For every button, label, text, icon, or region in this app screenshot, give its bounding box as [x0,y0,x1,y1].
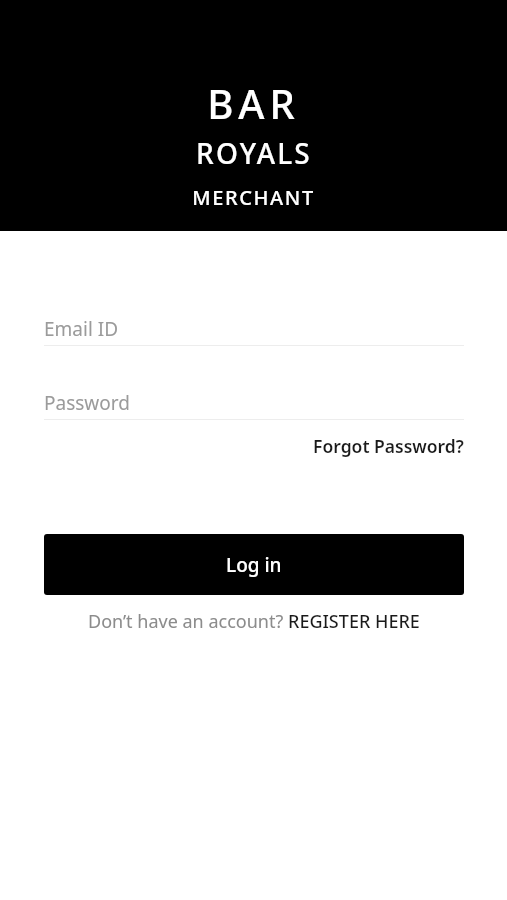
staticText: Forgot Password? [313,434,464,458]
staticText: Log in [226,552,282,578]
staticText: ROYALS [196,134,312,172]
button[interactable]: Email ID [44,313,464,345]
staticText: BAR [207,76,300,130]
staticText: Password [44,390,130,416]
button[interactable]: Password [44,387,464,419]
staticText: Email ID [44,316,119,342]
staticText: Don’t have an account? [88,609,288,634]
button[interactable]: REGISTER HERE [288,609,420,634]
button[interactable]: Forgot Password? [313,434,464,458]
button[interactable]: Log in [44,534,464,595]
staticText: REGISTER HERE [288,609,420,634]
staticText: MERCHANT [192,184,315,211]
